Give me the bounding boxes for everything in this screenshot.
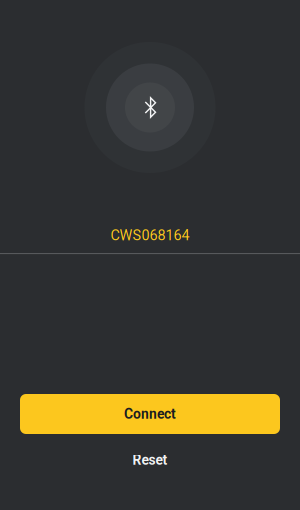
button[interactable]: Reset [0,444,300,476]
staticText: Reset [132,452,167,468]
button[interactable]: Connect [20,394,280,434]
staticText: Connect [124,406,176,422]
staticText: CWS068164 [110,227,189,244]
